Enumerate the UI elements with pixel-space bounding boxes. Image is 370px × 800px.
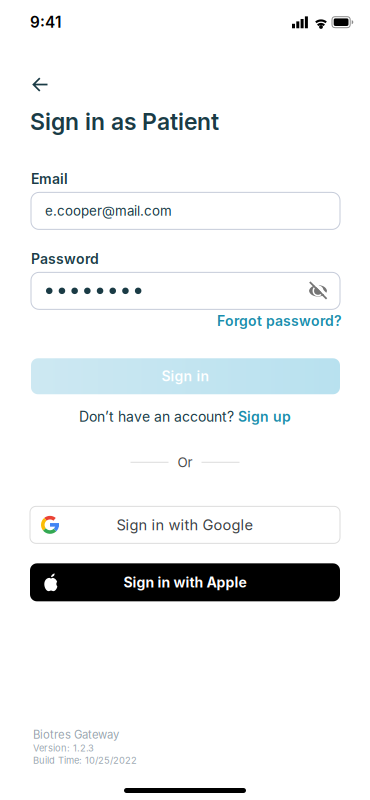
staticText: Build Time: 10/25/2022	[33, 755, 137, 766]
staticText: Sign in with Apple	[123, 574, 246, 591]
staticText: Version: 1.2.3	[33, 742, 94, 754]
button[interactable]: Sign in	[31, 358, 340, 394]
staticText: Sign up	[238, 408, 291, 425]
staticText: Or	[177, 454, 192, 470]
staticText: 9:41	[30, 13, 61, 32]
staticText: Sign in as Patient	[30, 108, 219, 135]
button[interactable]: Forgot password?	[217, 312, 342, 329]
button[interactable]: Show password	[308, 282, 340, 300]
staticText: Email	[31, 170, 68, 187]
staticText: Sign in	[161, 368, 209, 385]
staticText: Biotres Gateway	[33, 728, 119, 741]
staticText: Password	[31, 250, 99, 267]
button[interactable]: Sign up	[238, 408, 291, 425]
button[interactable]: Back	[0, 32, 48, 92]
button[interactable]: Sign in with Apple	[30, 563, 340, 601]
staticText: Forgot password?	[217, 312, 342, 329]
staticText: e.cooper@mail.com	[45, 203, 172, 219]
staticText: Sign in with Google	[116, 516, 253, 534]
staticText: Don’t have an account?	[79, 408, 234, 425]
button[interactable]: Sign in with Google	[30, 506, 340, 543]
